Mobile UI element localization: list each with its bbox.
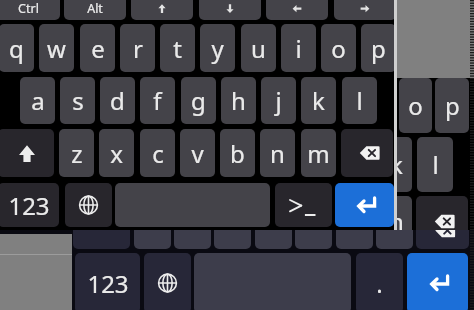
button[interactable]: t bbox=[160, 24, 195, 72]
button[interactable]: q bbox=[0, 24, 34, 72]
staticText: j bbox=[275, 84, 282, 117]
button[interactable]: Down bbox=[199, 0, 261, 20]
button[interactable] bbox=[214, 230, 251, 249]
button[interactable]: p bbox=[435, 78, 469, 133]
staticText: r bbox=[133, 32, 143, 65]
button[interactable]: h bbox=[221, 77, 256, 124]
staticText: g bbox=[191, 84, 206, 117]
button[interactable]: k bbox=[396, 137, 412, 192]
button[interactable]: Right bbox=[334, 0, 394, 20]
button[interactable]: g bbox=[181, 77, 216, 124]
button[interactable]: k bbox=[301, 77, 336, 124]
staticText: o bbox=[408, 89, 423, 122]
button[interactable]: s bbox=[60, 77, 95, 124]
button[interactable] bbox=[255, 230, 292, 249]
staticText: k bbox=[312, 84, 325, 117]
button[interactable]: Terminal commands bbox=[275, 183, 332, 227]
button[interactable]: Backspace bbox=[416, 196, 468, 247]
staticText: b bbox=[230, 137, 245, 170]
staticText: o bbox=[331, 32, 346, 65]
staticText: d bbox=[110, 84, 125, 117]
staticText: v bbox=[191, 137, 204, 170]
button[interactable]: x bbox=[99, 129, 134, 177]
button[interactable]: 123 bbox=[75, 253, 140, 310]
staticText: t bbox=[173, 32, 182, 65]
button[interactable]: Enter bbox=[407, 253, 468, 310]
button[interactable] bbox=[336, 230, 373, 249]
staticText: Alt bbox=[87, 0, 103, 17]
button[interactable] bbox=[174, 230, 211, 249]
staticText: n bbox=[270, 137, 285, 170]
button[interactable]: Alt bbox=[64, 0, 126, 20]
button[interactable]: l bbox=[342, 77, 377, 124]
button[interactable]: j bbox=[261, 77, 296, 124]
button[interactable]: Change language bbox=[65, 183, 112, 227]
button[interactable]: . bbox=[356, 253, 403, 310]
button[interactable]: p bbox=[361, 24, 394, 72]
button[interactable]: c bbox=[140, 129, 175, 177]
staticText: x bbox=[110, 137, 123, 170]
button[interactable]: 123 bbox=[0, 183, 59, 227]
staticText: y bbox=[211, 32, 224, 65]
staticText: c bbox=[152, 137, 164, 170]
staticText: 123 bbox=[8, 189, 50, 222]
button[interactable]: Enter bbox=[335, 183, 394, 227]
button[interactable]: v bbox=[180, 129, 215, 177]
button[interactable] bbox=[295, 230, 332, 249]
button[interactable]: u bbox=[241, 24, 276, 72]
button[interactable]: e bbox=[80, 24, 115, 72]
button[interactable]: f bbox=[140, 77, 175, 124]
button[interactable]: o bbox=[399, 78, 432, 133]
staticText: s bbox=[72, 84, 84, 117]
staticText: a bbox=[31, 84, 45, 117]
staticText: w bbox=[47, 32, 66, 65]
staticText: f bbox=[153, 84, 162, 117]
button[interactable]: Change language bbox=[144, 253, 191, 310]
staticText: u bbox=[251, 32, 266, 65]
button[interactable] bbox=[115, 183, 270, 227]
button[interactable]: z bbox=[59, 129, 94, 177]
button[interactable]: a bbox=[20, 77, 55, 124]
button[interactable]: y bbox=[200, 24, 235, 72]
button[interactable]: Backspace bbox=[416, 230, 469, 249]
staticText: l bbox=[356, 84, 363, 117]
button[interactable]: l bbox=[417, 137, 453, 192]
button[interactable] bbox=[376, 230, 413, 249]
button[interactable]: b bbox=[220, 129, 255, 177]
button[interactable]: Up bbox=[131, 0, 193, 20]
staticText: . bbox=[376, 267, 383, 300]
staticText: p bbox=[445, 89, 460, 122]
staticText: h bbox=[396, 205, 404, 238]
staticText: q bbox=[9, 32, 24, 65]
button[interactable]: h bbox=[396, 196, 412, 247]
button[interactable]: d bbox=[100, 77, 135, 124]
staticText: p bbox=[371, 32, 386, 65]
staticText: z bbox=[71, 137, 83, 170]
button[interactable]: i bbox=[281, 24, 316, 72]
button[interactable]: r bbox=[120, 24, 155, 72]
button[interactable]: Left bbox=[266, 0, 328, 20]
button[interactable]: w bbox=[39, 24, 74, 72]
staticText: h bbox=[231, 84, 246, 117]
staticText: k bbox=[396, 148, 403, 181]
staticText: e bbox=[91, 32, 105, 65]
button[interactable]: Ctrl bbox=[0, 0, 60, 20]
button[interactable] bbox=[73, 230, 130, 249]
button[interactable]: o bbox=[321, 24, 356, 72]
staticText: i bbox=[295, 32, 302, 65]
staticText: Ctrl bbox=[18, 0, 39, 17]
button[interactable]: Backspace bbox=[341, 129, 393, 177]
staticText: 123 bbox=[87, 267, 129, 300]
button[interactable]: m bbox=[301, 129, 336, 177]
staticText: l bbox=[432, 148, 439, 181]
button[interactable]: n bbox=[260, 129, 295, 177]
staticText: m bbox=[307, 137, 330, 170]
button[interactable] bbox=[134, 230, 171, 249]
button[interactable]: Shift bbox=[0, 129, 54, 177]
